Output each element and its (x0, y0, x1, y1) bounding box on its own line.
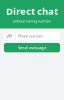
staticText: without saving number (12, 18, 51, 24)
staticText: Phone number (18, 33, 43, 38)
button[interactable]: Send message (4, 43, 60, 52)
staticText: Send message (18, 45, 46, 50)
staticText: Direct chat (6, 5, 58, 17)
staticText: +91 (6, 33, 12, 38)
